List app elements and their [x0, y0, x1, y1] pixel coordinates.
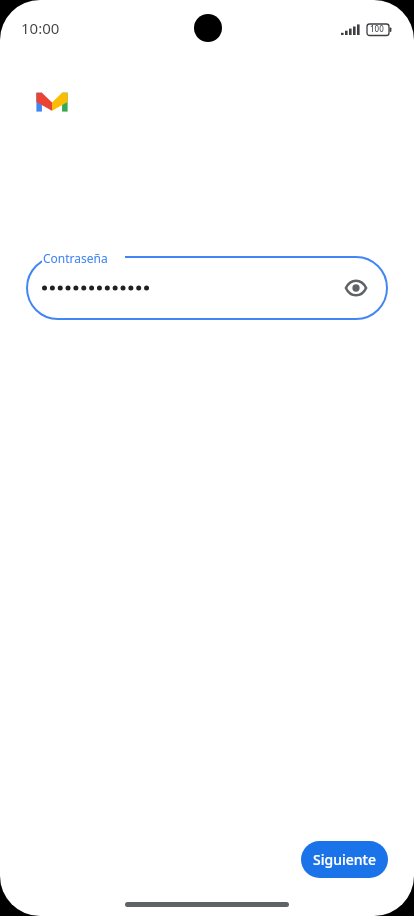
staticText: Siguiente [313, 850, 376, 869]
staticText: 100 [370, 23, 384, 34]
staticText: Contraseña [43, 250, 108, 266]
button[interactable]: Mostrar contraseña [26, 256, 388, 320]
button[interactable]: Mostrar contraseña [338, 270, 374, 306]
staticText: 10:00 [21, 18, 60, 38]
button[interactable]: Siguiente [301, 841, 388, 878]
button[interactable]: Gmail [28, 78, 76, 126]
